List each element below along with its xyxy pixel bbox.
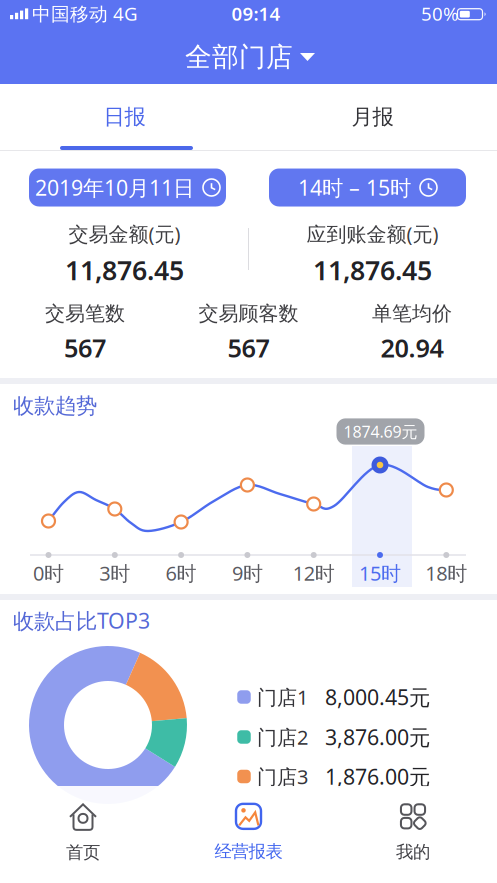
staticText: 0时	[33, 560, 64, 586]
staticText: 经营报表	[214, 841, 282, 862]
staticText: 11,876.45	[313, 252, 432, 287]
staticText: 日报	[103, 104, 145, 130]
button[interactable]: 经营报表	[168, 787, 328, 879]
button[interactable]: 2019年10月11日	[29, 168, 226, 206]
staticText: 交易金额(元)	[68, 220, 180, 247]
button[interactable]: 14时 – 15时	[269, 168, 466, 206]
staticText: 交易顾客数	[198, 301, 298, 326]
staticText: 567	[64, 331, 106, 365]
staticText: 9时	[232, 560, 263, 586]
staticText: 全部门店	[185, 41, 293, 73]
staticText: 20.94	[380, 331, 443, 365]
staticText: 14时 – 15时	[298, 173, 411, 202]
staticText: 收款趋势	[13, 393, 97, 419]
staticText: 18时	[425, 560, 467, 586]
staticText: 2019年10月11日	[35, 173, 194, 202]
staticText: 1,876.00元	[325, 762, 430, 791]
staticText: 门店1	[257, 684, 308, 710]
staticText: 1874.69元	[343, 421, 417, 442]
staticText: 月报	[351, 104, 393, 130]
staticText: 3,876.00元	[325, 723, 430, 751]
staticText: 12时	[293, 560, 335, 586]
staticText: 单笔均价	[372, 301, 452, 326]
staticText: 收款占比TOP3	[13, 606, 150, 635]
staticText: 567	[227, 331, 269, 365]
staticText: 15时	[359, 560, 401, 586]
staticText: 6时	[166, 560, 197, 586]
staticText: 50%	[421, 1, 459, 26]
button[interactable]: 首页	[3, 787, 163, 879]
staticText: 中国移动 4G	[32, 1, 138, 26]
staticText: 09:14	[231, 1, 280, 26]
staticText: 首页	[66, 842, 100, 863]
staticText: 11,876.45	[65, 252, 184, 287]
button[interactable]: 我的	[333, 787, 493, 879]
button[interactable]: 日报	[0, 84, 248, 150]
staticText: 门店3	[257, 763, 308, 790]
staticText: 应到账金额(元)	[306, 220, 438, 247]
staticText: 3时	[99, 560, 130, 586]
staticText: 交易笔数	[45, 301, 125, 326]
staticText: 我的	[396, 841, 430, 863]
button[interactable]: 全部门店	[150, 32, 350, 82]
staticText: 门店2	[257, 724, 308, 750]
staticText: 8,000.45元	[325, 683, 430, 711]
button[interactable]: 月报	[248, 84, 496, 150]
